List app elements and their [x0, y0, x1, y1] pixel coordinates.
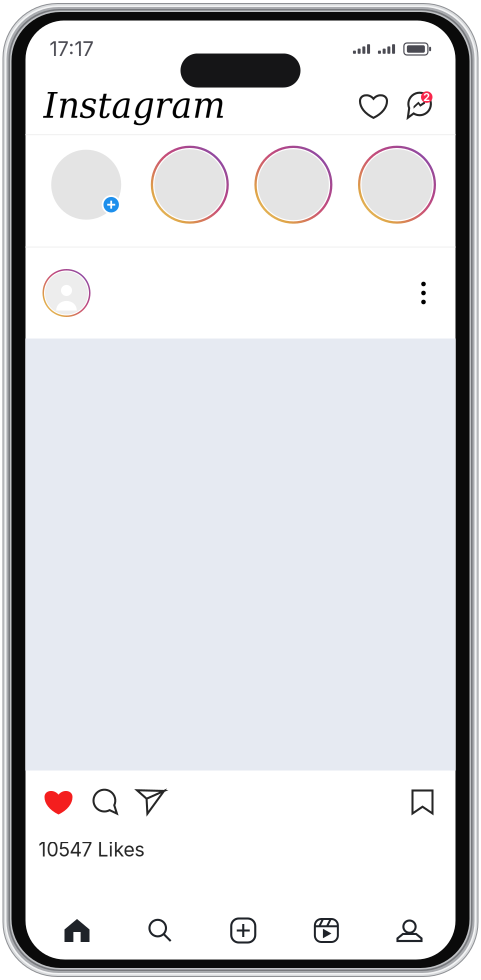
button[interactable]: Home	[45, 906, 109, 954]
button[interactable]: Like	[40, 782, 76, 822]
button[interactable]: Reels	[294, 906, 358, 954]
button[interactable]: Profile	[40, 267, 92, 319]
button[interactable]: Share	[132, 782, 168, 822]
button[interactable]: Story	[254, 146, 332, 224]
button[interactable]: Messages	[399, 87, 437, 125]
button[interactable]: Profile	[377, 906, 441, 954]
button[interactable]: More options	[406, 271, 440, 315]
staticText: 10547 Likes	[38, 838, 144, 861]
button[interactable]: Notifications	[355, 87, 391, 125]
button[interactable]: Search	[128, 906, 192, 954]
staticText: 2	[423, 91, 430, 103]
staticText: 17:17	[49, 37, 93, 61]
button[interactable]: Create	[211, 906, 275, 954]
button[interactable]: Add to your story	[47, 146, 125, 224]
button[interactable]: Save	[404, 782, 440, 822]
staticText: Instagram	[43, 86, 225, 126]
button[interactable]: Story	[358, 146, 436, 224]
button[interactable]: Story	[151, 146, 229, 224]
button[interactable]: Comment	[87, 782, 123, 822]
